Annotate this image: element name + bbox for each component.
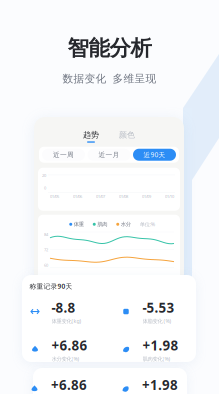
staticText: 01/07 — [96, 194, 105, 199]
staticText: +6.86 — [51, 376, 87, 394]
staticText: 0 — [44, 185, 46, 191]
staticText: -8.8 — [51, 299, 75, 316]
staticText: +1.98 — [142, 376, 178, 394]
staticText: 单位:% — [140, 221, 155, 228]
staticText: 数据变化 多维呈现 — [62, 72, 156, 85]
staticText: 趋势 — [83, 130, 99, 140]
staticText: 体重 — [74, 221, 84, 228]
staticText: 72 — [44, 247, 48, 252]
staticText: 60 — [44, 262, 48, 268]
staticText: 颜色 — [119, 130, 135, 140]
staticText: 01/09 — [142, 194, 151, 199]
staticText: 近一月 — [98, 151, 119, 159]
staticText: 01/10 — [165, 194, 174, 199]
button[interactable]: 趋势 — [73, 130, 109, 143]
staticText: 体重变化(kg) — [51, 317, 81, 324]
staticText: 肌肉 — [97, 221, 107, 228]
button[interactable]: 近一周 — [42, 149, 85, 161]
staticText: 体脂变化 (%) — [142, 317, 171, 324]
staticText: 智能分析 — [67, 35, 151, 61]
staticText: 近一周 — [53, 151, 74, 159]
staticText: 称重记录90天 — [29, 282, 72, 291]
staticText: 近90天 — [143, 150, 165, 159]
staticText: 20 — [42, 173, 46, 178]
staticText: 01/05 — [50, 194, 59, 199]
staticText: -5.53 — [142, 299, 174, 316]
staticText: 水分 — [121, 221, 131, 228]
staticText: 84 — [44, 232, 48, 237]
staticText: 水分变化(%) — [51, 355, 79, 362]
staticText: +6.86 — [51, 336, 87, 354]
staticText: 肌肉变化(%) — [142, 355, 170, 362]
button[interactable]: 近一月 — [87, 149, 130, 161]
button[interactable]: 颜色 — [109, 130, 145, 143]
staticText: +1.98 — [142, 336, 178, 354]
staticText: 01/06 — [73, 194, 82, 199]
staticText: 01/08 — [119, 194, 128, 199]
button[interactable]: 近90天 — [133, 149, 176, 161]
